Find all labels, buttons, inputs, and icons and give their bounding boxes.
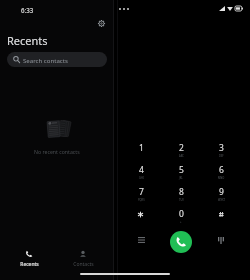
button[interactable]: 1	[123, 137, 159, 159]
staticText: +	[180, 220, 182, 224]
button[interactable]: Call	[170, 231, 192, 253]
button[interactable]: 2	[163, 137, 199, 159]
button[interactable]: Contacts	[56, 249, 110, 273]
staticText: 8	[179, 186, 184, 198]
button[interactable]: 9	[203, 181, 239, 203]
staticText: MNO	[218, 176, 225, 180]
staticText: 6:33	[21, 6, 34, 14]
staticText: Contacts	[73, 261, 94, 268]
button[interactable]: 4	[123, 159, 159, 181]
button[interactable]	[203, 203, 239, 225]
button[interactable]: 5	[163, 159, 199, 181]
staticText: 0	[179, 208, 184, 220]
staticText: ABC	[179, 154, 184, 158]
staticText: PQRS	[138, 198, 145, 202]
button[interactable]: 3	[203, 137, 239, 159]
staticText: 5	[179, 164, 184, 176]
button[interactable]: 7	[123, 181, 159, 203]
button[interactable]: 0	[163, 203, 199, 225]
button[interactable]	[123, 203, 159, 225]
staticText: Recents	[7, 33, 48, 48]
button[interactable]: 6	[203, 159, 239, 181]
staticText: No recent contacts	[34, 148, 80, 155]
button[interactable]: Search contacts	[7, 52, 107, 67]
staticText: 3	[219, 142, 224, 154]
staticText: 9	[219, 186, 224, 198]
button[interactable]: Recents	[2, 249, 56, 273]
staticText: 2	[179, 142, 184, 154]
staticText: 6	[219, 164, 224, 176]
staticText: TUV	[179, 198, 184, 202]
button[interactable]: Settings	[94, 16, 108, 30]
staticText: 7	[139, 186, 144, 198]
staticText: Search contacts	[23, 56, 68, 64]
staticText: 4	[139, 164, 144, 176]
button[interactable]: 8	[163, 181, 199, 203]
staticText: GHI	[139, 176, 144, 180]
button[interactable]: Hide keypad	[213, 232, 229, 248]
button[interactable]: Show dialpad options	[133, 232, 149, 248]
staticText: JKL	[179, 176, 183, 180]
button[interactable]: More options	[117, 2, 131, 16]
staticText: WXYZ	[218, 198, 225, 202]
staticText: Recents	[20, 261, 39, 268]
staticText: DEF	[219, 154, 224, 158]
staticText: 1	[139, 142, 144, 154]
